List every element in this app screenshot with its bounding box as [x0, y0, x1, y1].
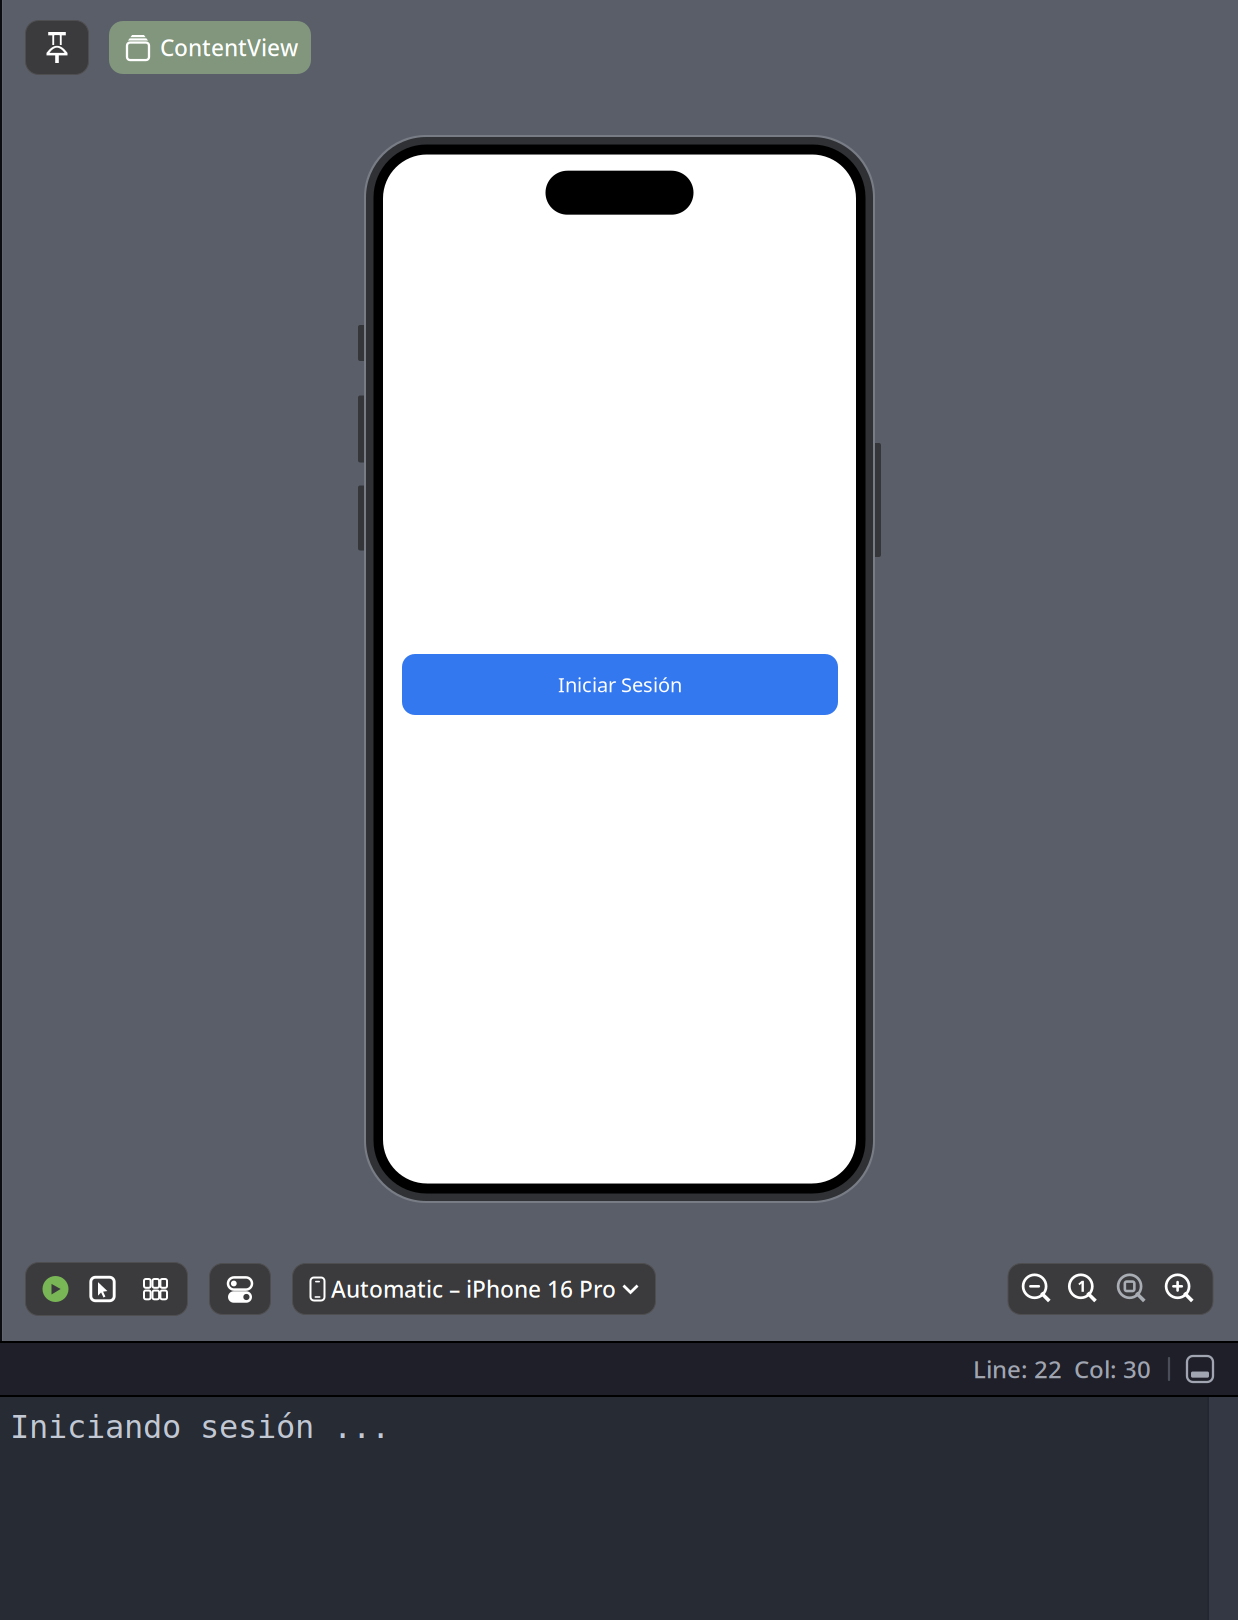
staticText: Automatic – iPhone 16 Pro: [331, 1274, 616, 1304]
staticText: Iniciando sesión ...: [10, 1409, 390, 1445]
button[interactable]: Zoom out: [1023, 1274, 1052, 1303]
button[interactable]: Live preview: [91, 1277, 114, 1301]
button[interactable]: Preview settings: [209, 1263, 270, 1314]
button[interactable]: Hide console: [1187, 1356, 1213, 1382]
button[interactable]: Zoom in: [1166, 1274, 1195, 1303]
button[interactable]: Iniciar Sesión: [402, 654, 838, 715]
button[interactable]: ContentView: [109, 21, 311, 74]
button[interactable]: Actual size: [1069, 1274, 1098, 1303]
button[interactable]: Automatic – iPhone 16 Pro: [292, 1263, 655, 1314]
button[interactable]: Preview gallery: [144, 1279, 167, 1299]
staticText: Line: 22 Col: 30: [973, 1353, 1151, 1385]
staticText: ContentView: [160, 32, 298, 62]
button[interactable]: Unpin preview: [25, 20, 88, 74]
button[interactable]: Run preview: [42, 1276, 68, 1302]
button[interactable]: Zoom to fit: [1118, 1274, 1147, 1303]
staticText: Iniciar Sesión: [558, 671, 682, 698]
